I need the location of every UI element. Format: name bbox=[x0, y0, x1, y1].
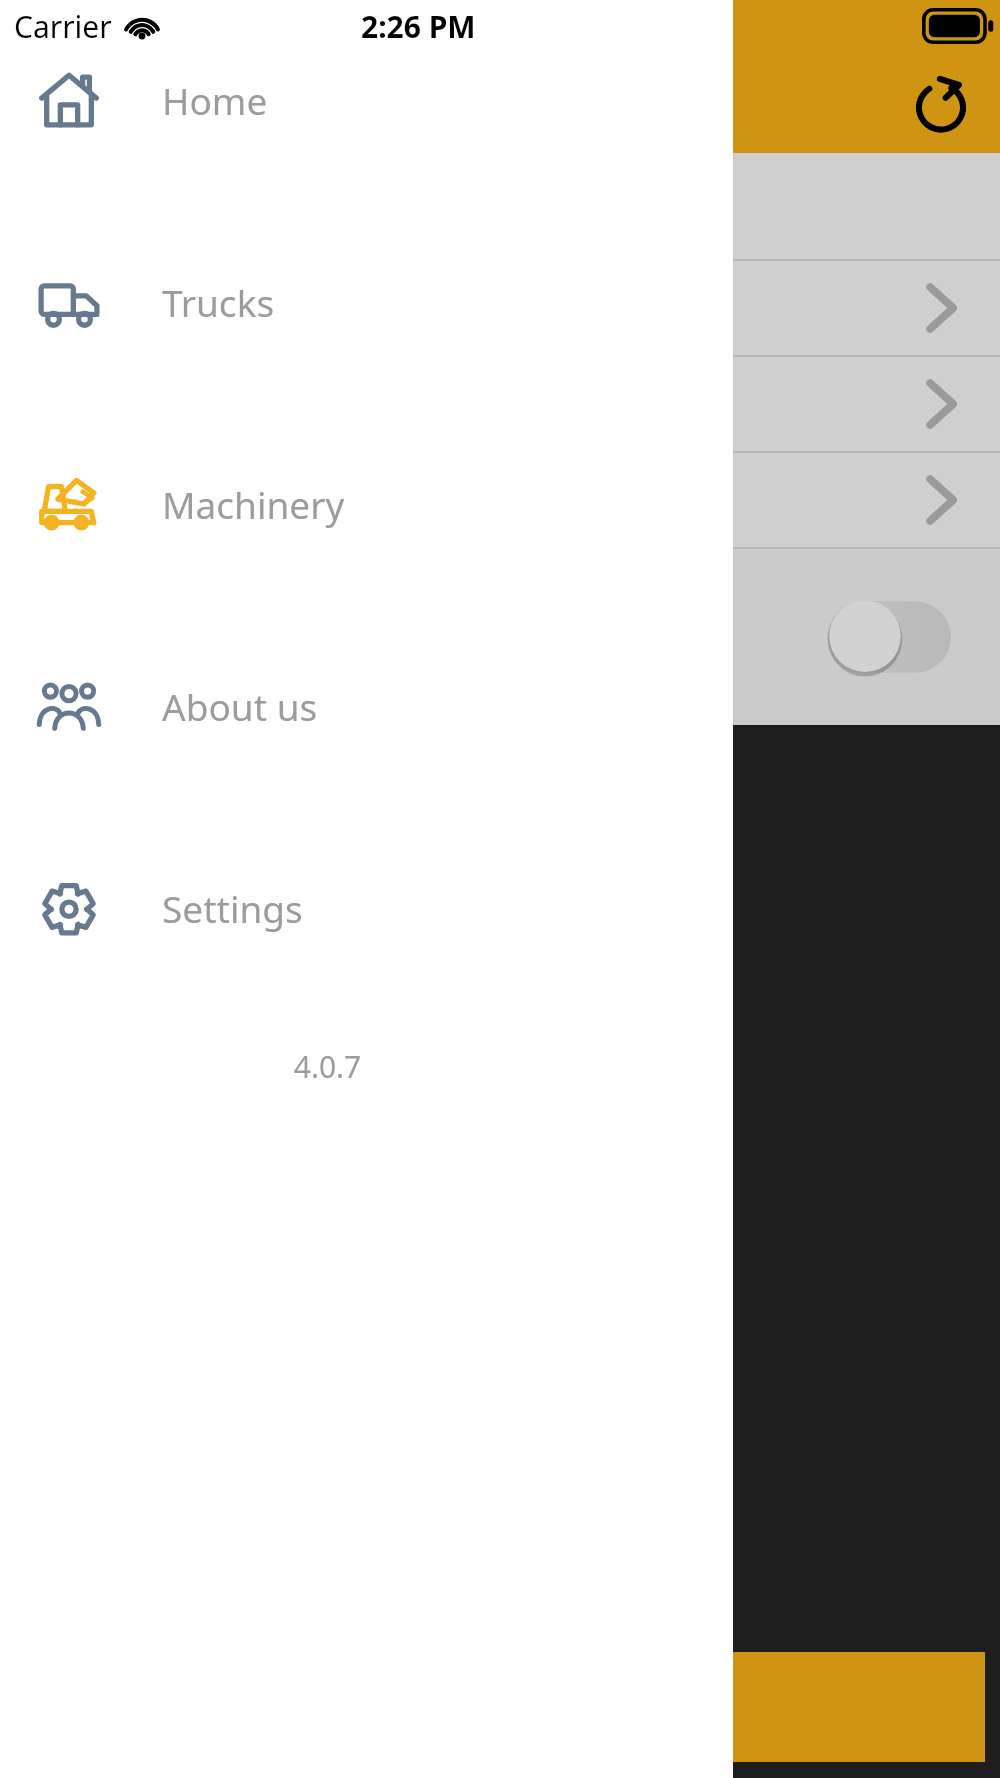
staticText: Machinery bbox=[162, 479, 345, 529]
button[interactable]: Trucks bbox=[0, 254, 733, 350]
staticText: 4.0.7 bbox=[0, 1046, 655, 1087]
staticText: Carrier bbox=[14, 6, 112, 47]
button[interactable] bbox=[733, 453, 1000, 547]
button[interactable]: Settings bbox=[0, 860, 733, 956]
button[interactable]: About us bbox=[0, 658, 733, 754]
staticText: Settings bbox=[162, 883, 303, 933]
button[interactable]: Machinery bbox=[0, 456, 733, 552]
button[interactable]: Toggle bbox=[733, 549, 1000, 725]
button[interactable] bbox=[733, 261, 1000, 355]
button[interactable]: Home bbox=[0, 52, 733, 148]
staticText: About us bbox=[162, 681, 318, 731]
staticText: Trucks bbox=[162, 277, 275, 327]
button[interactable]: Refresh bbox=[904, 67, 978, 141]
staticText: Home bbox=[162, 75, 268, 125]
button[interactable] bbox=[733, 357, 1000, 451]
staticText: 2:26 PM bbox=[361, 6, 476, 47]
